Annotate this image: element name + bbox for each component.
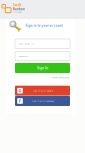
staticText: f [19, 98, 21, 104]
staticText: Swift [13, 3, 21, 7]
staticText: from digite [13, 11, 22, 13]
button[interactable]: Password [15, 51, 70, 61]
staticText: Password [18, 54, 27, 58]
button[interactable]: f [15, 96, 70, 106]
staticText: Sign in with Google [33, 89, 53, 92]
button[interactable]: G [15, 86, 70, 96]
button[interactable]: Forgot password? [51, 75, 70, 80]
button[interactable]: Enter Email id [15, 39, 70, 48]
staticText: Sign in to your account [25, 23, 62, 28]
staticText: Kanban [13, 7, 25, 11]
staticText: G [18, 88, 21, 93]
staticText: Forgot password? [52, 76, 69, 79]
staticText: Sign In [37, 66, 48, 70]
staticText: Enter Email id [18, 42, 33, 45]
button[interactable]: Sign In [15, 63, 70, 73]
staticText: Sign in with Facebook [32, 100, 54, 102]
